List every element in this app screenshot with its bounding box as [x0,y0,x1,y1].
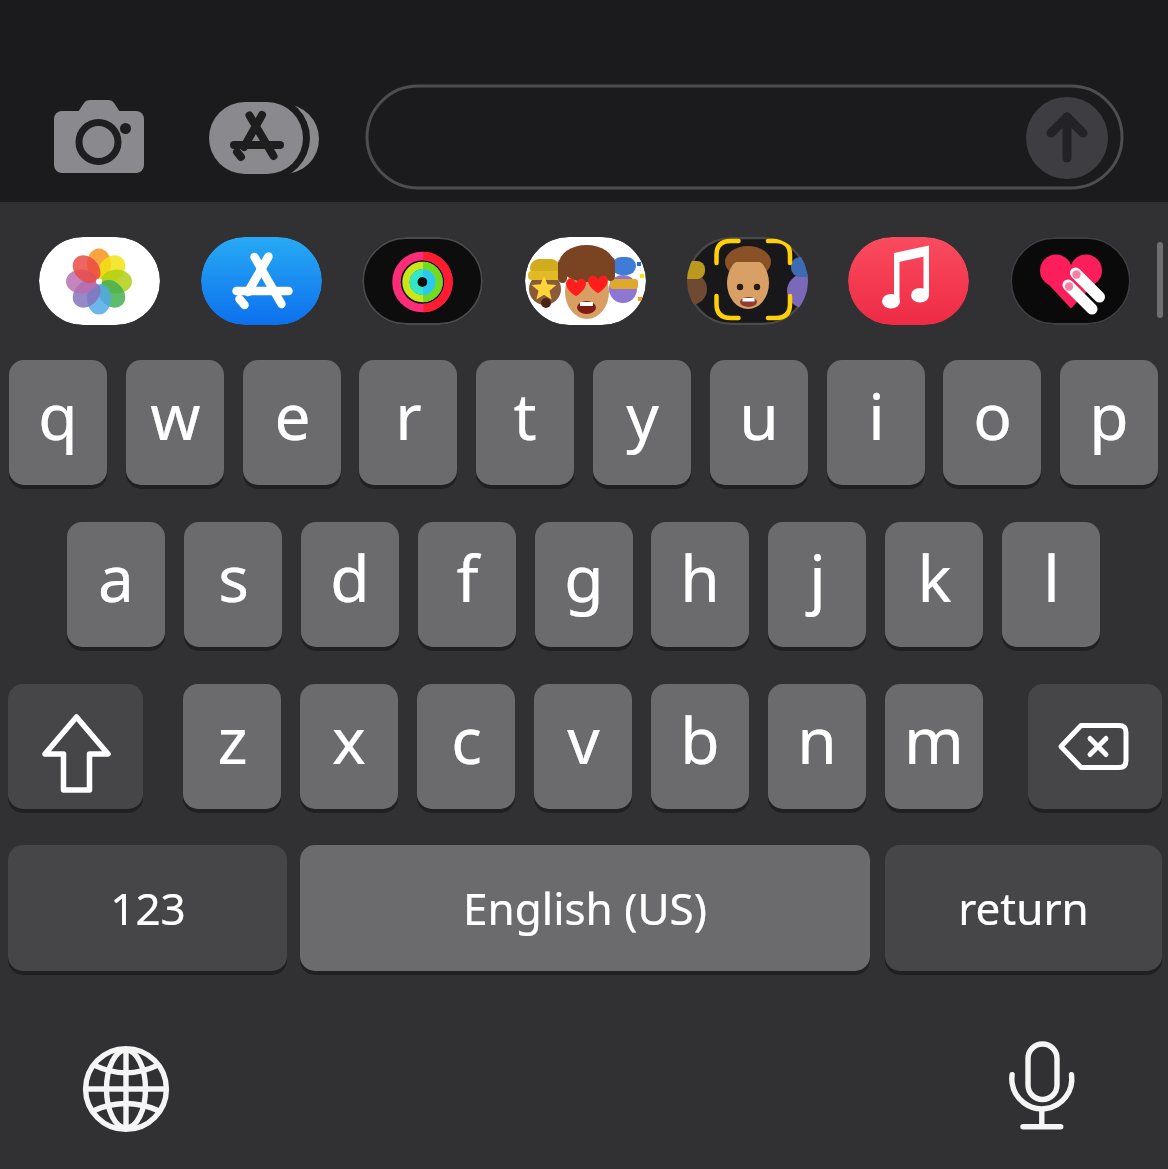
button[interactable] [201,237,322,325]
button[interactable]: r [359,360,457,485]
button[interactable]: m [885,684,983,809]
button[interactable]: a [67,522,165,647]
button[interactable] [367,86,1122,188]
button[interactable] [44,90,154,185]
button[interactable]: n [768,684,866,809]
button[interactable]: q [9,360,107,485]
button[interactable] [687,237,808,325]
staticText: u [739,372,779,459]
staticText: p [1089,372,1129,459]
staticText: c [451,696,482,783]
button[interactable]: z [183,684,281,809]
button[interactable]: v [534,684,632,809]
staticText: e [274,372,311,459]
button[interactable]: t [476,360,574,485]
staticText: f [456,534,479,621]
staticText: English (US) [463,878,707,938]
button[interactable]: i [827,360,925,485]
button[interactable]: c [417,684,515,809]
button[interactable]: h [651,522,749,647]
staticText: a [98,534,134,621]
button[interactable]: o [943,360,1041,485]
button[interactable] [82,1045,170,1133]
button[interactable] [8,684,143,809]
staticText: g [564,534,604,621]
button[interactable] [200,95,325,185]
staticText: y [626,372,659,459]
button[interactable]: l [1002,522,1100,647]
staticText: j [809,534,826,621]
button[interactable]: p [1060,360,1158,485]
staticText: w [150,372,201,459]
staticText: n [797,696,837,783]
staticText: i [868,372,885,459]
staticText: t [513,372,537,459]
button[interactable]: k [885,522,983,647]
staticText: l [1043,534,1060,621]
button[interactable]: u [710,360,808,485]
staticText: s [218,534,249,621]
button[interactable] [39,237,160,325]
button[interactable]: g [535,522,633,647]
staticText: b [680,696,720,783]
button[interactable] [525,237,646,325]
button[interactable]: English (US) [300,845,870,971]
staticText: d [330,534,370,621]
button[interactable]: d [301,522,399,647]
staticText: r [395,372,422,459]
button[interactable]: 123 [8,845,287,971]
button[interactable] [848,237,969,325]
staticText: 123 [110,878,186,938]
button[interactable]: f [418,522,516,647]
button[interactable] [1005,1040,1080,1135]
button[interactable]: e [243,360,341,485]
staticText: q [38,372,78,459]
staticText: x [332,696,366,783]
button[interactable]: y [593,360,691,485]
staticText: k [917,534,952,621]
staticText: o [973,372,1012,459]
staticText: m [904,696,964,783]
button[interactable]: return [885,845,1162,971]
button[interactable] [1026,97,1108,179]
button[interactable] [1028,684,1162,809]
button[interactable]: b [651,684,749,809]
button[interactable]: j [768,522,866,647]
staticText: z [217,696,248,783]
button[interactable] [1010,237,1131,325]
button[interactable] [362,237,483,325]
staticText: v [567,696,600,783]
button[interactable]: x [300,684,398,809]
button[interactable]: w [126,360,224,485]
staticText: return [958,878,1089,938]
staticText: h [680,534,720,621]
button[interactable]: s [184,522,282,647]
